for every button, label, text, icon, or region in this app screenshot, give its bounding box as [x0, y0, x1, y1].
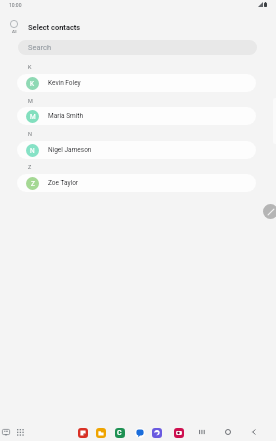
- button[interactable]: N: [17, 141, 256, 159]
- staticText: M: [28, 98, 33, 104]
- button[interactable]: All apps: [14, 426, 26, 438]
- button[interactable]: M: [17, 107, 256, 125]
- button[interactable]: Select all: [8, 20, 20, 34]
- button[interactable]: Keep: [77, 427, 88, 438]
- button[interactable]: Screen mirror: [0, 426, 12, 438]
- button[interactable]: Contacts: [114, 427, 125, 438]
- staticText: Z: [28, 164, 32, 170]
- staticText: Zoe Taylor: [48, 179, 79, 187]
- staticText: C: [117, 429, 122, 437]
- staticText: Search: [28, 43, 52, 52]
- button[interactable]: Camera: [173, 427, 184, 438]
- staticText: Nigel Jameson: [48, 146, 92, 154]
- button[interactable]: Recent apps: [196, 426, 208, 438]
- button[interactable]: Files: [95, 427, 106, 438]
- staticText: Select contacts: [28, 23, 81, 32]
- button[interactable]: Edit: [263, 204, 276, 219]
- staticText: Z: [31, 180, 35, 188]
- button[interactable]: Home: [222, 426, 234, 438]
- staticText: N: [28, 131, 32, 137]
- staticText: Kevin Foley: [48, 79, 81, 87]
- button[interactable]: Messages: [134, 427, 145, 438]
- staticText: N: [30, 147, 35, 155]
- staticText: M: [30, 113, 36, 121]
- button[interactable]: Meet: [151, 427, 162, 438]
- staticText: All: [12, 29, 17, 34]
- button[interactable]: Search: [18, 40, 257, 55]
- button[interactable]: Z: [17, 174, 256, 192]
- staticText: 10:00: [9, 2, 22, 8]
- staticText: Maria Smith: [48, 112, 83, 120]
- staticText: K: [30, 80, 35, 88]
- button[interactable]: K: [17, 74, 256, 92]
- button[interactable]: Back: [248, 426, 260, 438]
- staticText: K: [28, 64, 32, 70]
